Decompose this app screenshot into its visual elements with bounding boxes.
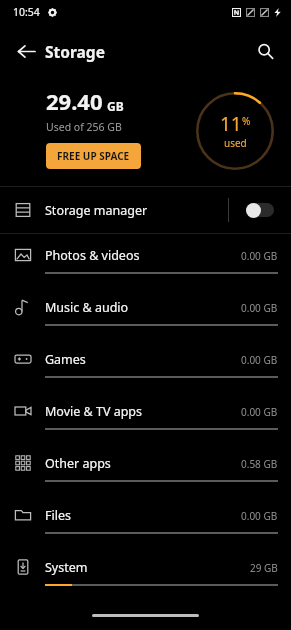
staticText: 29.40 [46, 86, 103, 116]
staticText: used [224, 136, 247, 150]
staticText: 0.58 GB [241, 457, 278, 471]
button[interactable]: FREE UP SPACE [46, 143, 141, 169]
staticText: Music & audio [45, 299, 129, 316]
staticText: Storage [45, 41, 105, 62]
button[interactable]: Music & audio [0, 286, 291, 338]
staticText: 11 [220, 111, 242, 137]
staticText: 0.00 GB [241, 301, 278, 315]
staticText: 0.00 GB [241, 353, 278, 367]
staticText: Other apps [45, 455, 111, 472]
staticText: % [242, 114, 251, 128]
staticText: Used of 256 GB [46, 120, 122, 134]
button[interactable]: System [0, 546, 291, 598]
button[interactable]: Movie & TV apps [0, 390, 291, 442]
staticText: 10:54 [13, 5, 40, 19]
button[interactable]: Storage manager [0, 187, 291, 233]
staticText: Games [45, 351, 86, 368]
button[interactable]: Files [0, 494, 291, 546]
staticText: 29 GB [250, 561, 278, 575]
button[interactable]: Storage manager toggle [240, 195, 280, 225]
staticText: Storage manager [45, 202, 148, 219]
staticText: Files [45, 507, 71, 524]
staticText: System [45, 559, 88, 576]
staticText: 0.00 GB [241, 249, 278, 263]
staticText: Movie & TV apps [45, 403, 143, 420]
staticText: FREE UP SPACE [57, 149, 130, 163]
button[interactable]: Photos & videos [0, 234, 291, 286]
button[interactable]: Back [6, 31, 46, 71]
button[interactable]: Other apps [0, 442, 291, 494]
staticText: 0.00 GB [241, 509, 278, 523]
staticText: GB [107, 98, 124, 114]
staticText: Photos & videos [45, 247, 140, 264]
button[interactable]: Search [245, 31, 285, 71]
staticText: 0.00 GB [241, 405, 278, 419]
button[interactable]: Games [0, 338, 291, 390]
